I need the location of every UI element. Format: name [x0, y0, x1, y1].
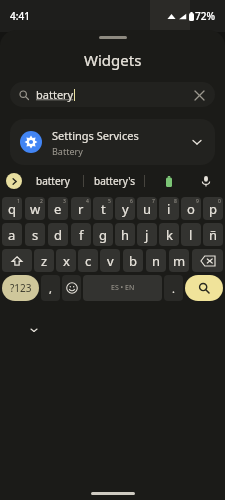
- staticText: ñ: [209, 226, 218, 244]
- staticText: z: [41, 252, 48, 270]
- staticText: battery: [36, 87, 74, 102]
- button[interactable]: t: [93, 197, 113, 220]
- staticText: ?123: [10, 281, 32, 295]
- staticText: 0: [218, 198, 221, 205]
- button[interactable]: battery: [10, 82, 215, 107]
- button[interactable]: u: [137, 197, 157, 220]
- staticText: b: [129, 252, 137, 270]
- button[interactable]: m: [169, 249, 189, 272]
- staticText: .: [172, 281, 175, 296]
- button[interactable]: r: [71, 197, 91, 220]
- staticText: h: [121, 226, 130, 244]
- button[interactable]: i: [159, 197, 179, 220]
- staticText: u: [143, 200, 152, 218]
- staticText: m: [173, 252, 186, 270]
- button[interactable]: n: [146, 249, 166, 272]
- staticText: s: [32, 226, 39, 244]
- button[interactable]: p: [203, 197, 223, 220]
- staticText: 4: [86, 198, 89, 205]
- staticText: g: [99, 226, 107, 244]
- staticText: q: [8, 200, 16, 218]
- staticText: 4:41: [10, 9, 30, 23]
- staticText: d: [54, 226, 62, 244]
- button[interactable]: y: [115, 197, 135, 220]
- button[interactable]: Hide keyboard: [27, 323, 41, 337]
- staticText: n: [152, 252, 161, 270]
- staticText: r: [78, 200, 84, 218]
- button[interactable]: Emoji: [62, 275, 81, 301]
- staticText: 2: [40, 198, 43, 205]
- button[interactable]: v: [100, 249, 120, 272]
- button[interactable]: w: [25, 197, 45, 220]
- button[interactable]: q: [2, 197, 22, 220]
- button[interactable]: k: [159, 223, 179, 246]
- button[interactable]: More suggestions: [6, 173, 22, 189]
- staticText: x: [63, 252, 70, 270]
- button[interactable]: f: [71, 223, 91, 246]
- button[interactable]: Settings Services: [10, 119, 215, 165]
- button[interactable]: o: [181, 197, 201, 220]
- button[interactable]: a: [2, 223, 22, 246]
- staticText: c: [85, 252, 92, 270]
- staticText: Settings Services: [52, 128, 139, 143]
- button[interactable]: Search: [185, 275, 223, 301]
- button[interactable]: Shift: [2, 249, 32, 272]
- button[interactable]: g: [93, 223, 113, 246]
- button[interactable]: battery's: [84, 165, 144, 197]
- button[interactable]: ñ: [203, 223, 223, 246]
- button[interactable]: battery: [22, 165, 83, 197]
- button[interactable]: h: [115, 223, 135, 246]
- button[interactable]: l: [181, 223, 201, 246]
- button[interactable]: x: [56, 249, 76, 272]
- staticText: t: [101, 200, 106, 218]
- staticText: o: [187, 200, 195, 218]
- staticText: p: [209, 200, 217, 218]
- staticText: v: [107, 252, 114, 270]
- staticText: battery: [36, 174, 70, 188]
- staticText: ,: [49, 281, 52, 296]
- button[interactable]: Backspace: [192, 249, 223, 272]
- staticText: a: [8, 226, 16, 244]
- staticText: Battery: [52, 145, 83, 157]
- button[interactable]: c: [78, 249, 98, 272]
- button[interactable]: Voice input: [193, 165, 219, 197]
- staticText: l: [189, 226, 193, 244]
- staticText: 5: [108, 198, 111, 205]
- button[interactable]: Clear search: [192, 88, 206, 102]
- staticText: w: [30, 200, 41, 218]
- button[interactable]: z: [34, 249, 54, 272]
- button[interactable]: j: [137, 223, 157, 246]
- button[interactable]: ,: [41, 275, 60, 301]
- button[interactable]: b: [123, 249, 143, 272]
- staticText: e: [54, 200, 62, 218]
- button[interactable]: .: [164, 275, 183, 301]
- staticText: 7: [152, 198, 155, 205]
- staticText: 9: [196, 198, 199, 205]
- staticText: k: [166, 226, 173, 244]
- button[interactable]: [145, 165, 193, 197]
- staticText: 3: [63, 198, 66, 205]
- button[interactable]: e: [48, 197, 68, 220]
- staticText: j: [145, 226, 149, 244]
- staticText: 8: [174, 198, 177, 205]
- staticText: f: [79, 226, 84, 244]
- staticText: y: [122, 200, 129, 218]
- button[interactable]: ?123: [2, 275, 39, 301]
- staticText: 1: [17, 198, 20, 205]
- button[interactable]: Space: [83, 275, 162, 301]
- staticText: battery's: [94, 174, 135, 188]
- staticText: ES • EN: [111, 283, 135, 293]
- button[interactable]: s: [25, 223, 45, 246]
- staticText: i: [167, 200, 171, 218]
- button[interactable]: Expand: [189, 134, 205, 150]
- staticText: 72%: [195, 9, 215, 23]
- staticText: 6: [130, 198, 133, 205]
- button[interactable]: d: [48, 223, 68, 246]
- staticText: Widgets: [84, 50, 142, 70]
